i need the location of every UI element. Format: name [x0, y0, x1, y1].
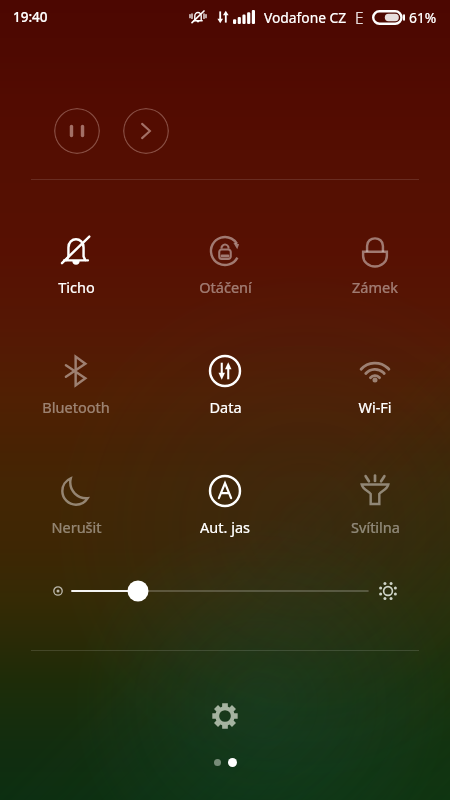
staticText: Nerušit	[51, 517, 102, 537]
staticText: E	[355, 7, 364, 28]
button[interactable]: Settings	[203, 694, 247, 738]
staticText: 61%	[409, 8, 437, 27]
staticText: Vodafone CZ	[264, 8, 347, 27]
button[interactable]: Wi-Fi	[301, 349, 449, 419]
button[interactable]: Svítilna	[301, 469, 449, 539]
staticText: Bluetooth	[42, 397, 110, 417]
button[interactable]: Aut. jas	[151, 469, 299, 539]
button[interactable]: Data	[151, 349, 299, 419]
staticText: Svítilna	[351, 517, 400, 537]
button[interactable]: Zámek	[301, 229, 449, 299]
staticText: Data	[209, 397, 242, 417]
staticText: Aut. jas	[200, 517, 250, 537]
button[interactable]: Otáčení	[151, 229, 299, 299]
staticText: Wi-Fi	[358, 397, 392, 417]
staticText: Zámek	[352, 277, 398, 297]
staticText: Ticho	[58, 277, 95, 297]
staticText: Otáčení	[199, 277, 252, 297]
staticText: 19:40	[13, 8, 48, 26]
button[interactable]: Next	[123, 108, 169, 154]
button[interactable]: Brightness	[0, 571, 450, 611]
button[interactable]: Bluetooth	[2, 349, 150, 419]
button[interactable]: Ticho	[2, 229, 150, 299]
button[interactable]: Pause	[54, 108, 100, 154]
button[interactable]: Nerušit	[2, 469, 150, 539]
